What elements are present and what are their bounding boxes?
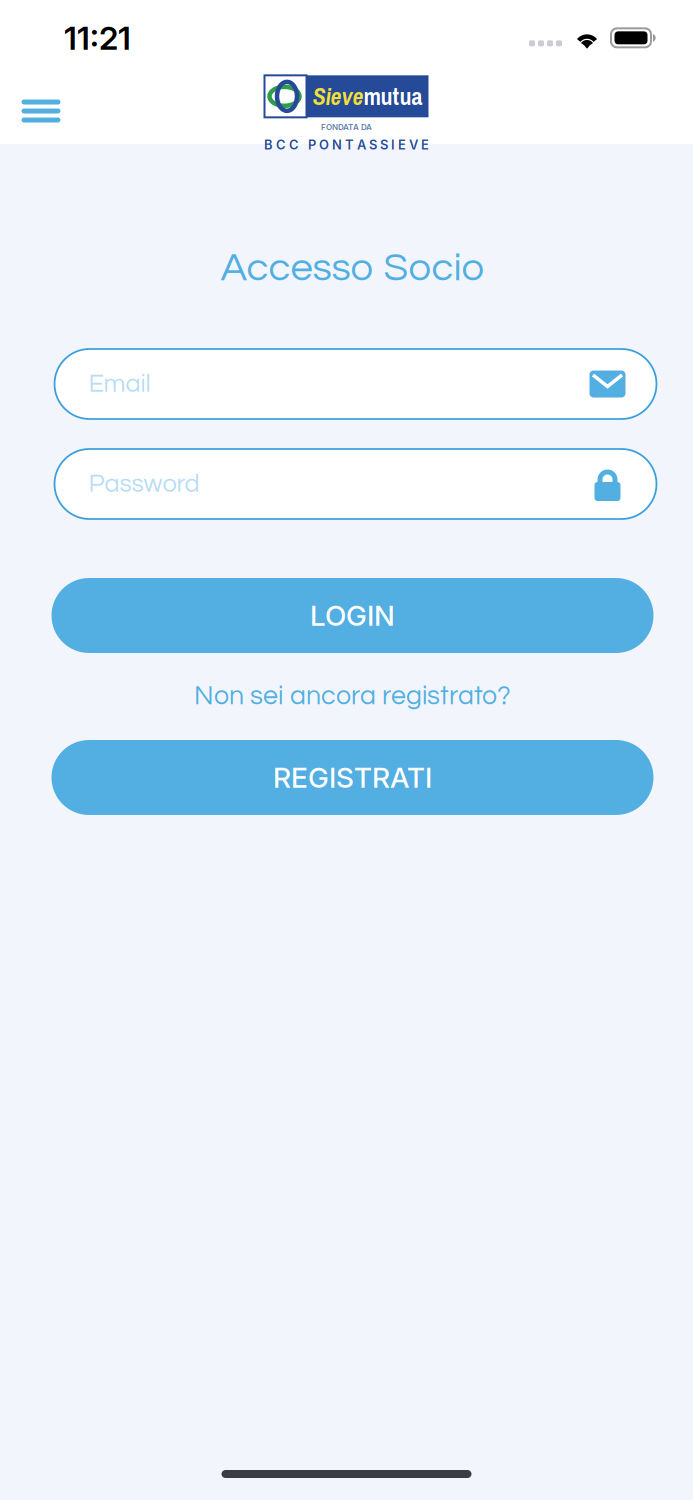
staticText: FONDATA DA: [321, 122, 372, 132]
staticText: Sieve: [312, 80, 363, 112]
staticText: Email: [88, 371, 150, 397]
staticText: Password: [88, 471, 199, 497]
staticText: LOGIN: [310, 599, 395, 632]
staticText: 11:21: [64, 19, 131, 57]
button[interactable]: Menu: [1, 87, 81, 135]
staticText: mutua: [363, 80, 422, 112]
staticText: B C C P O N T A S S I E V E: [264, 137, 429, 153]
button[interactable]: REGISTRATI: [51, 740, 653, 815]
button[interactable]: LOGIN: [51, 578, 653, 653]
button[interactable]: Non sei ancora registrato?: [142, 674, 562, 718]
staticText: Non sei ancora registrato?: [194, 682, 511, 710]
staticText: REGISTRATI: [273, 761, 432, 794]
staticText: Accesso Socio: [220, 247, 484, 289]
